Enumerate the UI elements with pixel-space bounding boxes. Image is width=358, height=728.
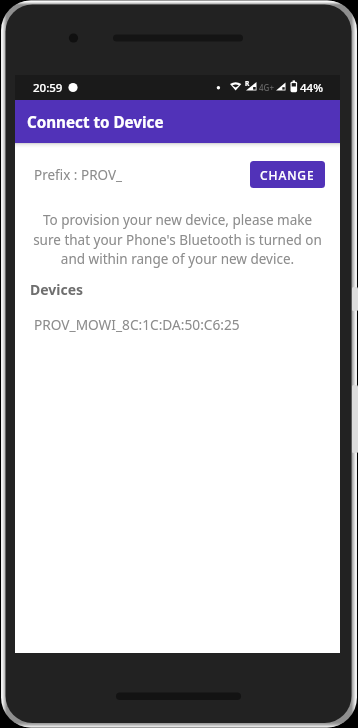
staticText: CHANGE — [260, 167, 315, 183]
staticText: 4G+ — [259, 82, 274, 93]
staticText: Prefix : PROV_ — [34, 166, 123, 184]
button[interactable]: CHANGE — [250, 161, 325, 188]
staticText: 44% — [300, 80, 323, 96]
staticText: PROV_MOWI_8C:1C:DA:50:C6:25 — [34, 315, 240, 334]
button[interactable]: PROV_MOWI_8C:1C:DA:50:C6:25 — [15, 311, 340, 337]
staticText: 20:59 — [33, 80, 63, 96]
staticText: Connect to Device — [27, 112, 164, 133]
staticText: R — [245, 79, 250, 88]
staticText: Devices — [30, 280, 84, 299]
staticText: To provision your new device, please mak… — [31, 211, 324, 268]
